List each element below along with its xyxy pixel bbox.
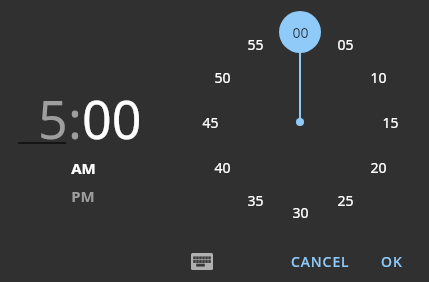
staticText: CANCEL [291, 252, 350, 271]
staticText: PM [71, 186, 95, 206]
button[interactable]: PM [52, 185, 114, 207]
staticText: 30 [292, 203, 309, 222]
button[interactable]: 20 [360, 156, 396, 178]
staticText: AM [71, 158, 96, 178]
staticText: 35 [247, 191, 264, 210]
button[interactable]: 45 [192, 111, 228, 133]
staticText: 5 [38, 83, 68, 145]
staticText: 20 [370, 158, 387, 177]
staticText: 55 [247, 35, 264, 54]
button[interactable]: 30 [282, 201, 318, 223]
staticText: 25 [337, 191, 354, 210]
staticText: 10 [370, 68, 387, 87]
staticText: 15 [382, 113, 399, 132]
staticText: 45 [202, 113, 219, 132]
button[interactable]: 25 [327, 189, 363, 211]
button[interactable]: 5 [38, 83, 68, 145]
button[interactable]: 15 [372, 111, 408, 133]
button[interactable]: OK [370, 246, 414, 276]
staticText: 40 [214, 158, 231, 177]
button[interactable]: AM [52, 157, 114, 179]
staticText: 00 [292, 23, 309, 42]
staticText: 05 [337, 35, 354, 54]
staticText: 00 [82, 83, 142, 145]
button[interactable]: 10 [360, 66, 396, 88]
button[interactable]: Switch to text input [185, 248, 218, 274]
button[interactable]: 40 [204, 156, 240, 178]
button[interactable]: CANCEL [282, 246, 358, 276]
button[interactable]: 05 [327, 33, 363, 55]
staticText: 50 [214, 68, 231, 87]
staticText: : [68, 83, 82, 145]
button[interactable]: 55 [237, 33, 273, 55]
button[interactable]: 00 [82, 83, 142, 145]
button[interactable]: 35 [237, 189, 273, 211]
button[interactable]: 50 [204, 66, 240, 88]
button[interactable]: 00 [282, 21, 318, 43]
staticText: OK [381, 252, 403, 271]
